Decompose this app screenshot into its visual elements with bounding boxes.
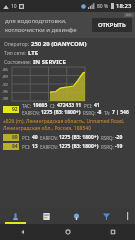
- staticText: EARFCN:: [40, 135, 58, 141]
- staticText: TAC:: [22, 103, 32, 109]
- staticText: PCI:: [22, 135, 31, 141]
- staticText: котлоочистки и дезинфе: [5, 26, 77, 34]
- staticText: EARFCN:: [22, 110, 40, 116]
- staticText: Тип сети:: [4, 50, 26, 57]
- staticText: -95: [2, 89, 8, 94]
- staticText: 89: [12, 134, 18, 141]
- button[interactable]: 92: [0, 101, 135, 117]
- staticText: IN SERVICE: [33, 58, 66, 66]
- button[interactable]: Recents: [90, 224, 135, 240]
- staticText: -8: [97, 109, 102, 116]
- button[interactable]: 89: [0, 133, 135, 142]
- staticText: 40: [32, 134, 38, 141]
- button[interactable]: ОТКРЫТЬ: [92, 18, 132, 32]
- staticText: TA:: [104, 110, 111, 116]
- staticText: LTE: [28, 49, 39, 57]
- staticText: 1275 (B3: 1800+): [59, 143, 99, 150]
- staticText: 7 | 546 (m): [112, 109, 133, 116]
- staticText: для водоподготовки,: [5, 17, 67, 25]
- staticText: Состояние:: [4, 59, 31, 66]
- staticText: 472433 11: [57, 102, 82, 109]
- button[interactable]: 84: [0, 142, 135, 151]
- button[interactable]: Cells: [61, 208, 91, 224]
- staticText: 84: [12, 143, 18, 150]
- staticText: ОТКРЫТЬ: [98, 21, 126, 29]
- staticText: ±826 (m), Ленинградская область, Unnamed…: [3, 118, 125, 125]
- button[interactable]: Home: [45, 224, 90, 240]
- staticText: 1275 (B3: 1800+): [41, 109, 81, 116]
- button[interactable]: Map: [31, 208, 61, 224]
- staticText: Ленинградская обл., Россия, 188540: [3, 125, 92, 132]
- staticText: PCI:: [22, 144, 31, 150]
- staticText: 80 %: [97, 3, 109, 10]
- staticText: EARFCN:: [40, 144, 58, 150]
- staticText: 10: [11, 3, 17, 10]
- staticText: Ads: [126, 13, 132, 17]
- staticText: PCI:: [84, 103, 93, 109]
- staticText: -98: [2, 96, 8, 101]
- staticText: 19665: [33, 102, 48, 109]
- button[interactable]: Tools: [91, 208, 121, 224]
- staticText: RSRQ:: [83, 110, 96, 116]
- staticText: -92: [2, 82, 8, 87]
- staticText: -19: [115, 143, 123, 150]
- button[interactable]: Back: [0, 224, 45, 240]
- staticText: -86: [2, 67, 8, 72]
- staticText: RSRQ:: [101, 135, 114, 141]
- staticText: 92: [12, 106, 18, 113]
- staticText: RSRQ:: [101, 144, 114, 150]
- staticText: Оператор:: [4, 41, 29, 48]
- staticText: 18:23: [116, 2, 132, 10]
- staticText: -20: [115, 134, 123, 141]
- staticText: -89: [2, 74, 8, 79]
- staticText: 13: [32, 143, 38, 150]
- staticText: CI:: [50, 103, 56, 109]
- staticText: 250 20 (DANYCOM): [31, 40, 87, 48]
- staticText: 41: [94, 102, 100, 109]
- button[interactable]: Signal: [0, 208, 31, 224]
- button[interactable]: More options: [121, 208, 135, 224]
- staticText: 1275 (B3: 1800+): [59, 134, 99, 141]
